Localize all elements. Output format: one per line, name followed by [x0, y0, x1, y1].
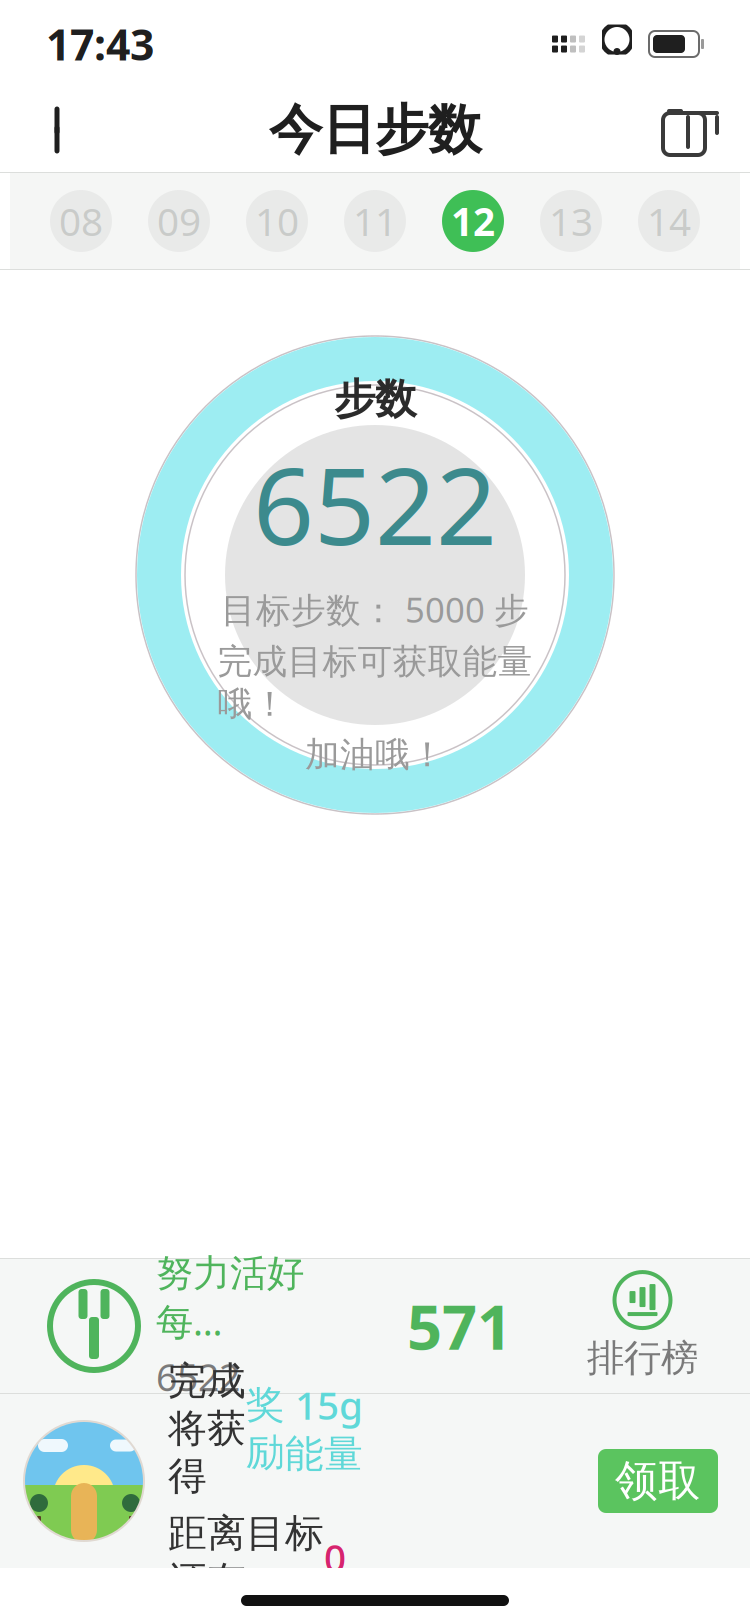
staticText: 距离目标还有 [168, 1510, 324, 1605]
staticText: 加油哦！ [305, 733, 445, 776]
staticText: 完成将获得 [168, 1357, 246, 1500]
staticText: 努力活好每… [156, 1250, 304, 1346]
staticText: 奖励 [246, 1381, 285, 1476]
staticText: 目标步数： 5000 步 [221, 586, 529, 632]
staticText: 领取 [615, 1455, 701, 1507]
button[interactable]: 12 [424, 173, 522, 269]
button[interactable]: 11 [326, 173, 424, 269]
staticText: 完成目标可获取能量哦！ [217, 640, 532, 726]
staticText: 13 [549, 195, 593, 247]
staticText: 10 [255, 195, 299, 247]
button[interactable]: 返回 [14, 88, 110, 172]
staticText: 08 [59, 195, 103, 247]
button[interactable]: 分享 [640, 88, 736, 172]
staticText: 步数 [334, 374, 416, 425]
staticText: 6522 [156, 1352, 240, 1401]
staticText: 14 [647, 195, 691, 247]
button[interactable]: 排行榜 [587, 1271, 750, 1381]
staticText: 17:43 [46, 16, 154, 72]
button[interactable]: 领取 [598, 1449, 718, 1513]
staticText: 6522 [253, 433, 497, 574]
staticText: 12 [451, 195, 495, 247]
staticText: 09 [157, 195, 201, 247]
button[interactable]: 14 [620, 173, 718, 269]
staticText: 今日步数 [269, 97, 481, 163]
staticText: 排行榜 [587, 1335, 698, 1381]
staticText: 11 [353, 195, 397, 247]
button[interactable]: 09 [130, 173, 228, 269]
button[interactable]: 努力活好每… [0, 1250, 332, 1401]
button[interactable]: 08 [32, 173, 130, 269]
staticText: 15g 能量 [285, 1379, 363, 1478]
staticText: 571 [407, 1285, 512, 1367]
button[interactable]: 13 [522, 173, 620, 269]
button[interactable]: 10 [228, 173, 326, 269]
staticText: 0 [324, 1532, 346, 1583]
